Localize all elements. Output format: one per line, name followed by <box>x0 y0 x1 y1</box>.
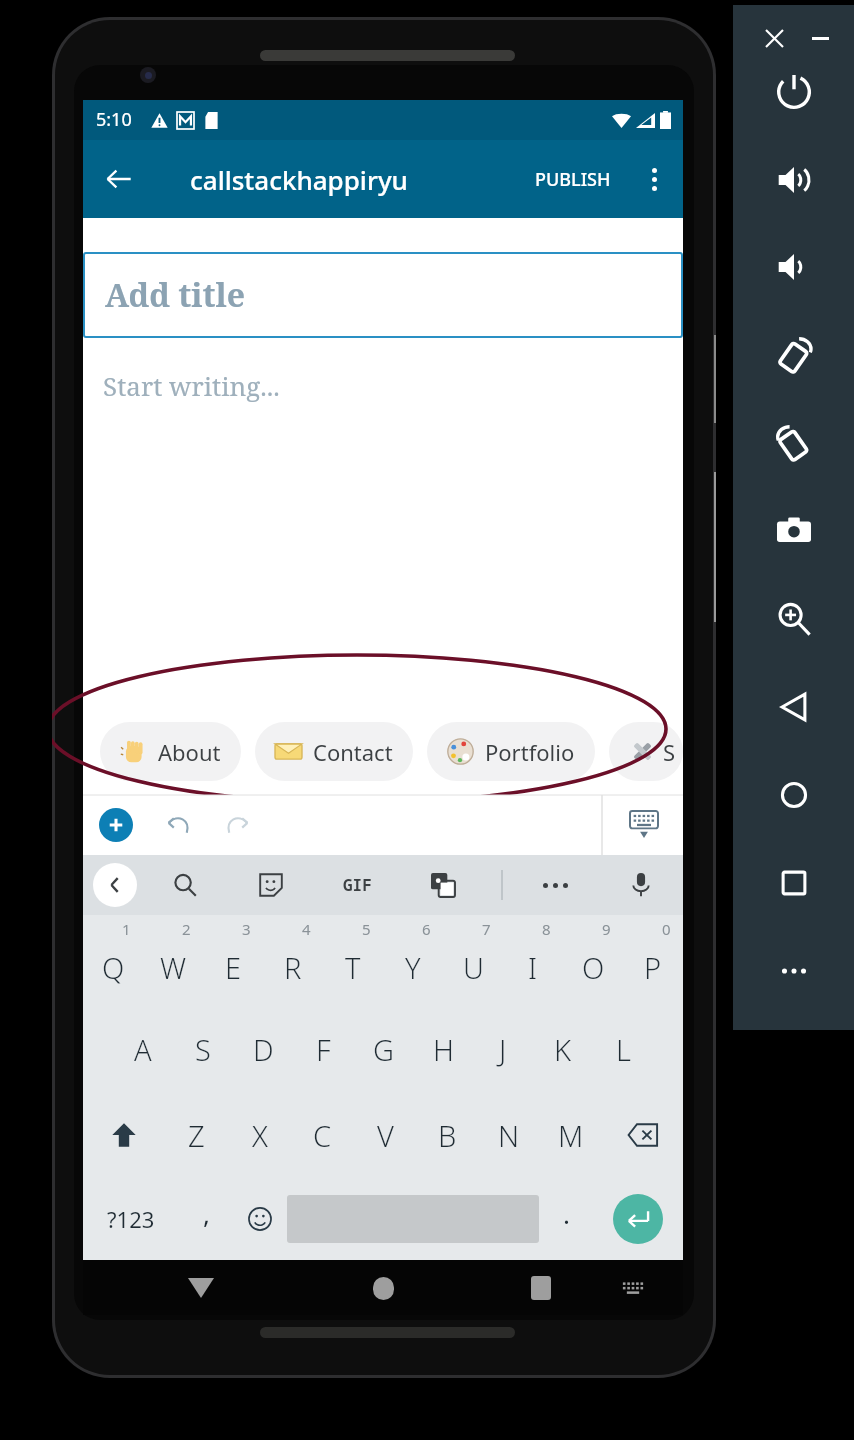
button[interactable]: Redo <box>219 807 255 843</box>
button[interactable]: K <box>533 1008 593 1090</box>
button[interactable]: Overview <box>761 850 827 916</box>
staticText: R <box>284 948 302 987</box>
staticText: G <box>373 1030 394 1069</box>
staticText: Add title <box>105 273 246 317</box>
staticText: Contact <box>313 737 393 767</box>
staticText: P <box>644 948 662 987</box>
staticText: . <box>563 1196 570 1231</box>
button[interactable]: Back <box>761 674 827 740</box>
staticText: S <box>195 1030 211 1069</box>
button[interactable]: More options <box>631 156 677 202</box>
button[interactable]: . <box>539 1178 593 1260</box>
button[interactable]: Screenshot <box>761 498 827 564</box>
button[interactable]: Back <box>179 1266 223 1310</box>
button[interactable]: Undo <box>161 807 197 843</box>
button[interactable]: W <box>143 923 203 1004</box>
staticText: T <box>345 948 361 987</box>
staticText: E <box>225 948 242 987</box>
button[interactable]: Add title <box>83 252 683 338</box>
button[interactable]: Power <box>761 59 827 125</box>
button[interactable]: T <box>323 923 383 1004</box>
button[interactable]: Home <box>361 1266 405 1310</box>
button[interactable]: B <box>416 1094 478 1176</box>
button[interactable]: Start writing... <box>103 368 280 403</box>
staticText: V <box>377 1116 394 1155</box>
button[interactable]: Switch keyboard <box>613 1268 653 1308</box>
button[interactable]: N <box>478 1094 540 1176</box>
button[interactable]: H <box>413 1008 473 1090</box>
staticText: W <box>160 948 187 987</box>
button[interactable]: GIF <box>337 865 377 905</box>
staticText: 7 <box>482 919 491 939</box>
button[interactable]: I <box>503 923 563 1004</box>
staticText: 6 <box>422 919 431 939</box>
staticText: 2 <box>182 919 191 939</box>
button[interactable]: , <box>179 1178 233 1260</box>
button[interactable]: More <box>535 865 575 905</box>
button[interactable]: C <box>291 1094 354 1176</box>
staticText: D <box>253 1030 274 1069</box>
button[interactable]: Zoom <box>761 586 827 652</box>
staticText: 3 <box>242 919 251 939</box>
button[interactable]: Minimize <box>803 21 837 55</box>
button[interactable]: Volume down <box>761 234 827 300</box>
staticText: 5 <box>362 919 371 939</box>
staticText: Y <box>405 948 421 987</box>
button[interactable]: Search <box>165 865 205 905</box>
button[interactable]: Voice input <box>621 865 661 905</box>
staticText: callstackhappiryu <box>190 162 408 197</box>
button[interactable]: F <box>293 1008 353 1090</box>
button[interactable]: P <box>623 923 683 1004</box>
button[interactable]: Back <box>95 155 143 203</box>
staticText: 1 <box>122 919 131 939</box>
button[interactable]: About <box>100 722 241 781</box>
staticText: 5:10 <box>96 107 132 132</box>
button[interactable]: J <box>473 1008 533 1090</box>
button[interactable]: Enter <box>613 1194 663 1244</box>
staticText: Z <box>188 1116 205 1155</box>
staticText: GIF <box>343 874 372 896</box>
button[interactable]: L <box>593 1008 653 1090</box>
button[interactable]: More <box>761 938 827 1004</box>
button[interactable]: A <box>113 1008 173 1090</box>
button[interactable]: Stickers <box>251 865 291 905</box>
button[interactable]: M <box>540 1094 602 1176</box>
button[interactable]: Rotate left <box>761 322 827 388</box>
staticText: U <box>463 948 484 987</box>
staticText: 0 <box>662 919 671 939</box>
button[interactable]: Insert <box>99 808 133 842</box>
button[interactable]: Recents <box>519 1266 563 1310</box>
button[interactable]: R <box>263 923 323 1004</box>
button[interactable]: Home <box>761 762 827 828</box>
button[interactable]: Shift <box>83 1094 165 1176</box>
button[interactable]: Z <box>165 1094 228 1176</box>
button[interactable]: D <box>233 1008 293 1090</box>
button[interactable]: Y <box>383 923 443 1004</box>
button[interactable]: E <box>203 923 263 1004</box>
button[interactable]: Q <box>83 923 143 1004</box>
button[interactable]: Backspace <box>602 1094 683 1176</box>
button[interactable]: Contact <box>255 722 413 781</box>
button[interactable]: Close <box>757 21 791 55</box>
button[interactable]: G <box>353 1008 413 1090</box>
staticText: B <box>438 1116 457 1155</box>
button[interactable]: Expand toolbar <box>93 863 137 907</box>
button[interactable]: Portfolio <box>427 722 595 781</box>
button[interactable]: Translate <box>423 865 463 905</box>
button[interactable]: PUBLISH <box>527 159 619 200</box>
button[interactable]: Rotate right <box>761 410 827 476</box>
button[interactable]: Hide keyboard <box>623 804 665 846</box>
staticText: 9 <box>602 919 611 939</box>
button[interactable]: X <box>228 1094 291 1176</box>
button[interactable]: ?123 <box>83 1178 179 1260</box>
button[interactable]: Volume up <box>761 147 827 213</box>
button[interactable]: V <box>354 1094 416 1176</box>
button[interactable]: U <box>443 923 503 1004</box>
button[interactable]: O <box>563 923 623 1004</box>
staticText: C <box>313 1116 332 1155</box>
button[interactable]: S <box>609 722 683 781</box>
button[interactable]: Emoji <box>233 1178 287 1260</box>
staticText: A <box>134 1030 152 1069</box>
button[interactable]: S <box>173 1008 233 1090</box>
